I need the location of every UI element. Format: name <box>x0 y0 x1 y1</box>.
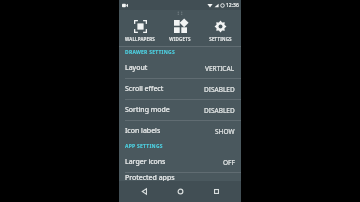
staticText: APP SETTINGS <box>125 143 163 150</box>
staticText: OFF <box>223 158 235 167</box>
other: Wallpapers <box>134 20 147 33</box>
staticText: SHOW <box>215 127 235 136</box>
button[interactable]: Icon labels <box>119 121 241 141</box>
button[interactable]: Home <box>169 181 191 202</box>
staticText: Sorting mode <box>125 105 170 115</box>
button[interactable]: Back <box>133 181 155 202</box>
button[interactable]: Larger icons <box>119 152 241 172</box>
staticText: VERTICAL <box>205 64 235 73</box>
staticText: Protected apps <box>125 173 175 181</box>
button[interactable]: Settings <box>201 17 239 44</box>
button[interactable]: Protected apps <box>119 173 241 181</box>
staticText: DRAWER SETTINGS <box>125 49 175 56</box>
other: Settings <box>214 20 227 33</box>
button[interactable]: Sorting mode <box>119 100 241 120</box>
staticText: 12:36 <box>226 2 239 9</box>
button[interactable]: Wallpapers <box>121 17 159 44</box>
staticText: Scroll effect <box>125 84 164 94</box>
button[interactable]: Layout <box>119 58 241 78</box>
button[interactable]: Widgets <box>161 17 199 44</box>
staticText: WIDGETS <box>169 36 191 42</box>
staticText: DISABLED <box>204 85 235 94</box>
staticText: DISABLED <box>204 106 235 115</box>
staticText: Icon labels <box>125 126 161 136</box>
button[interactable]: Recent apps <box>205 181 227 202</box>
staticText: Layout <box>125 63 148 73</box>
staticText: SETTINGS <box>209 36 232 42</box>
staticText: WALLPAPERS <box>125 36 155 42</box>
staticText: Larger icons <box>125 157 166 167</box>
other: Widgets <box>174 20 187 33</box>
button[interactable]: Scroll effect <box>119 79 241 99</box>
